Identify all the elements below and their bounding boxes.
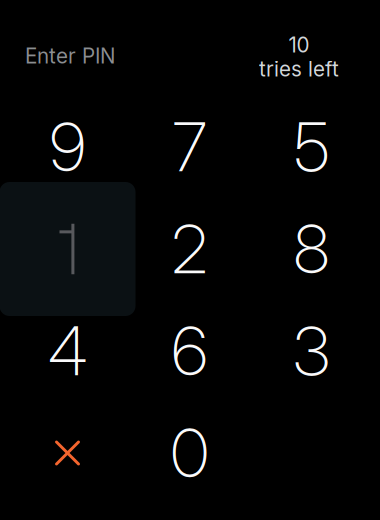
staticText: 4 [48,311,87,391]
staticText: Enter PIN [25,43,116,68]
button[interactable]: 4 [0,284,135,418]
staticText: 5 [294,107,329,187]
button[interactable]: 5 [243,80,379,214]
staticText: 0 [170,413,208,493]
button[interactable]: 9 [0,80,135,214]
staticText: 8 [293,209,329,289]
staticText: tries left [259,56,339,81]
staticText: 7 [172,107,206,187]
staticText: 2 [171,209,207,289]
staticText: 6 [171,311,207,391]
button[interactable]: 6 [121,284,257,418]
button[interactable]: 7 [121,80,257,214]
staticText: 9 [49,107,85,187]
button[interactable]: 0 [121,386,257,520]
button[interactable]: 2 [121,182,257,316]
staticText: 10 [288,32,309,57]
button[interactable] [0,182,135,316]
staticText: 3 [293,311,330,391]
button[interactable]: 8 [243,182,379,316]
button[interactable]: Delete [0,386,135,520]
button[interactable]: 3 [243,284,379,418]
